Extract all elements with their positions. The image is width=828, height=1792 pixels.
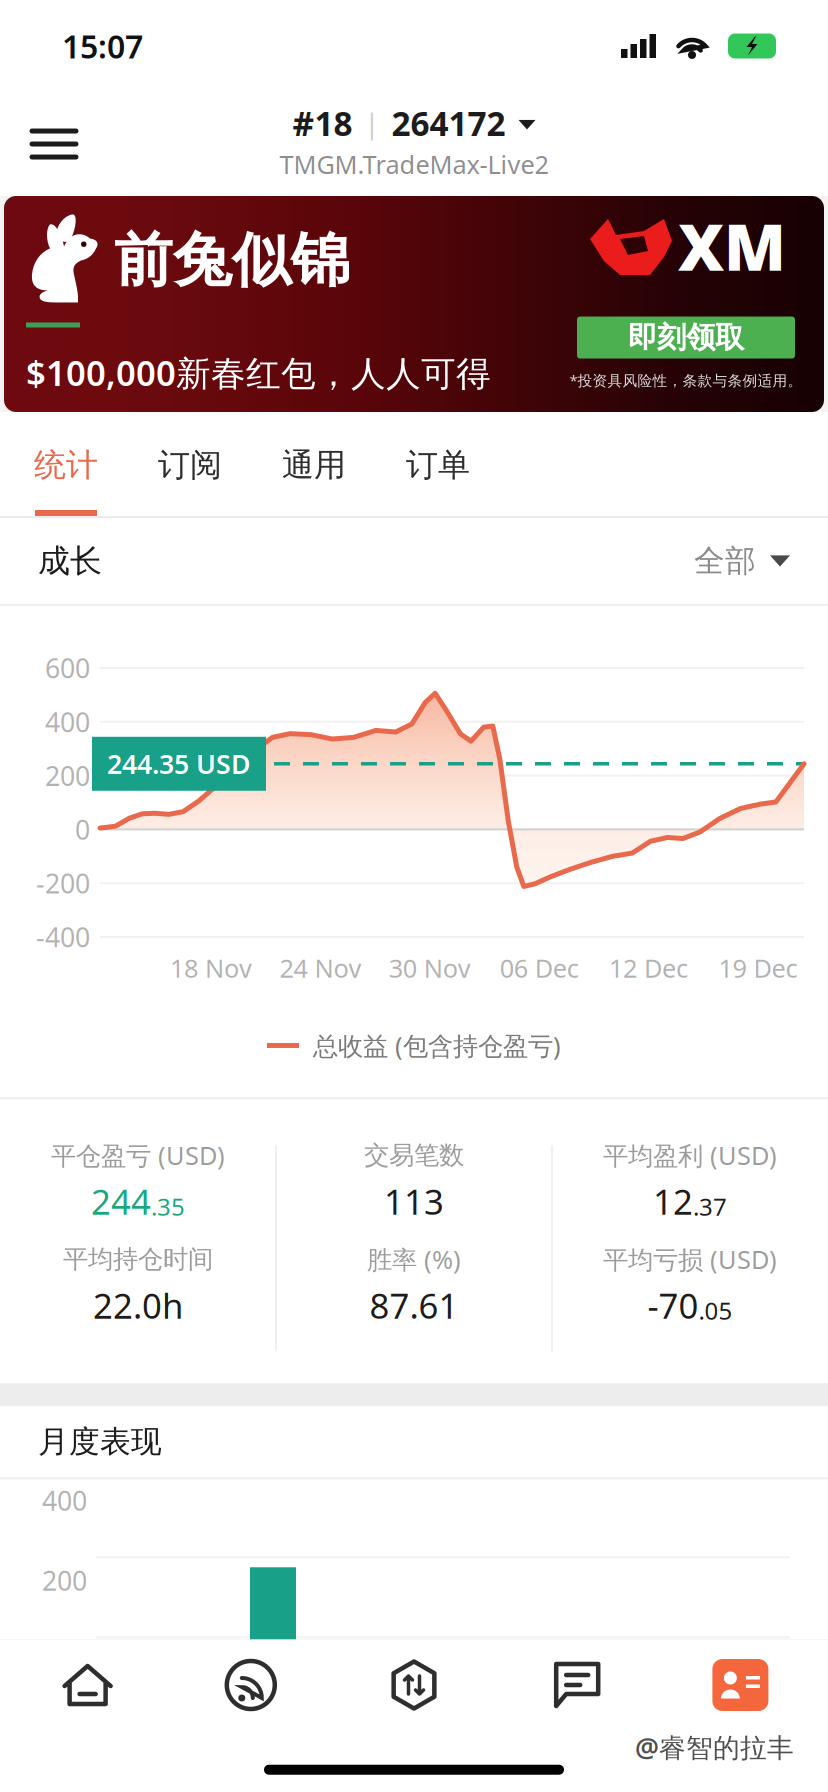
staticText: 06 Dec	[500, 951, 579, 985]
staticText: 87.61	[369, 1282, 458, 1328]
button[interactable]: 通用	[252, 420, 376, 516]
staticText: 总收益 (包含持仓盈亏)	[313, 1029, 561, 1062]
staticText: 统计	[34, 445, 98, 485]
staticText: #18	[292, 101, 352, 145]
staticText: 600	[45, 650, 90, 686]
button[interactable]: 即刻领取	[577, 316, 795, 358]
button[interactable]: Home	[6, 1640, 169, 1730]
staticText: 264172	[391, 101, 505, 145]
staticText: $100,000新春红包，人人可得	[26, 349, 491, 395]
staticText: 24 Nov	[279, 951, 361, 985]
button[interactable]: Menu	[0, 104, 102, 184]
button[interactable]: Account	[659, 1640, 822, 1730]
staticText: 400	[45, 704, 90, 739]
button[interactable]: Trade	[332, 1640, 496, 1730]
button[interactable]: 全部	[694, 520, 790, 602]
staticText: 12 Dec	[609, 951, 688, 985]
staticText: 平仓盈亏 (USD)	[51, 1138, 225, 1172]
staticText: .05	[698, 1294, 732, 1326]
staticText: 胜率 (%)	[367, 1242, 461, 1276]
staticText: 244	[91, 1178, 151, 1224]
button[interactable]: 订阅	[128, 420, 252, 516]
staticText: -200	[36, 865, 90, 901]
staticText: 平均持仓时间	[63, 1244, 213, 1275]
staticText: 全部	[694, 542, 756, 580]
staticText: TMGM.TradeMax-Live2	[279, 147, 548, 181]
staticText: 200	[42, 1563, 87, 1598]
staticText: 113	[384, 1178, 444, 1224]
staticText: 月度表现	[38, 1423, 162, 1461]
staticText: 成长	[38, 541, 102, 581]
staticText: 即刻领取	[628, 319, 744, 355]
staticText: 22.0h	[93, 1282, 183, 1328]
staticText: 0	[75, 812, 90, 847]
staticText: 通用	[282, 445, 346, 485]
staticText: 订阅	[158, 445, 222, 485]
staticText: 244.35 USD	[107, 746, 251, 781]
staticText: *投资具风险性，条款与条例适用。	[569, 370, 802, 390]
staticText: -70	[647, 1282, 698, 1328]
staticText: 400	[42, 1483, 87, 1518]
staticText: 200	[45, 758, 90, 793]
staticText: |	[364, 105, 379, 141]
staticText: 平均盈利 (USD)	[603, 1138, 777, 1172]
button[interactable]: 前兔似锦	[4, 196, 824, 412]
staticText: 前兔似锦	[114, 224, 350, 297]
staticText: 平均亏损 (USD)	[603, 1242, 777, 1276]
staticText: 18 Nov	[170, 951, 252, 985]
staticText: 15:07	[62, 25, 143, 67]
staticText: 30 Nov	[389, 951, 471, 985]
staticText: XM	[678, 203, 786, 288]
staticText: -400	[36, 919, 90, 955]
staticText: 交易笔数	[364, 1140, 464, 1171]
staticText: .35	[151, 1190, 185, 1222]
button[interactable]: Signals	[169, 1640, 332, 1730]
staticText: @睿智的拉丰	[635, 1729, 794, 1765]
staticText: 订单	[406, 445, 470, 485]
button[interactable]: Messages	[496, 1640, 659, 1730]
staticText: .37	[693, 1190, 727, 1222]
button[interactable]: 订单	[376, 420, 500, 516]
button[interactable]: 统计	[4, 420, 128, 516]
staticText: 19 Dec	[718, 951, 797, 985]
staticText: 12	[653, 1178, 693, 1224]
